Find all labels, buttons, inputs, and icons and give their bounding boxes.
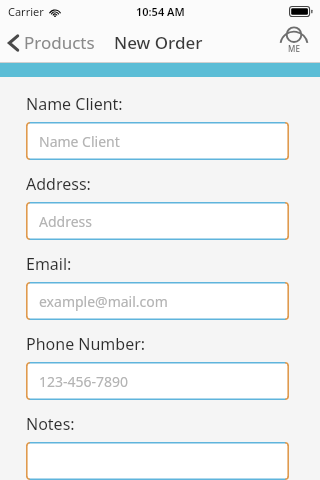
staticText: Email: [26, 253, 72, 275]
button[interactable]: Name Client [26, 122, 289, 160]
staticText: 10:54 AM [136, 4, 185, 19]
staticText: Name Client [39, 132, 120, 151]
staticText: Products [24, 31, 95, 54]
staticText: Phone Number: [26, 333, 146, 355]
staticText: Notes: [26, 413, 75, 435]
staticText: Name Client: [26, 93, 123, 115]
staticText: example@mail.com [39, 292, 168, 311]
staticText: New Order [114, 31, 203, 54]
button[interactable]: example@mail.com [26, 282, 289, 320]
button[interactable] [26, 442, 289, 480]
staticText: Address: [26, 173, 91, 195]
staticText: Address [39, 212, 92, 231]
button[interactable]: Address [26, 202, 289, 240]
button[interactable]: 123-456-7890 [26, 362, 289, 400]
staticText: Carrier [8, 4, 44, 19]
staticText: ME [288, 43, 300, 54]
button[interactable]: Profile [274, 22, 314, 62]
staticText: 123-456-7890 [39, 372, 129, 391]
button[interactable]: Products [0, 27, 103, 58]
